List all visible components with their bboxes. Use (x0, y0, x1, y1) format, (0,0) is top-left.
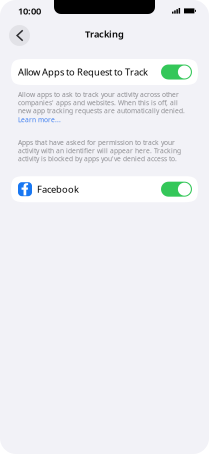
staticText: Facebook (37, 183, 79, 195)
button[interactable]: Allow Apps to Request to Track (11, 59, 198, 85)
staticText: Tracking (85, 28, 124, 40)
staticText: 10:00 (18, 5, 41, 17)
button[interactable]: Back (9, 25, 30, 46)
staticText: Allow Apps to Request to Track (18, 66, 148, 78)
staticText: Allow apps to ask to track your activity… (18, 90, 185, 115)
button[interactable]: Facebook (11, 176, 198, 202)
button[interactable]: Learn more... (18, 115, 61, 124)
staticText: Apps that have asked for permission to t… (18, 138, 181, 163)
staticText: Learn more... (18, 115, 61, 124)
